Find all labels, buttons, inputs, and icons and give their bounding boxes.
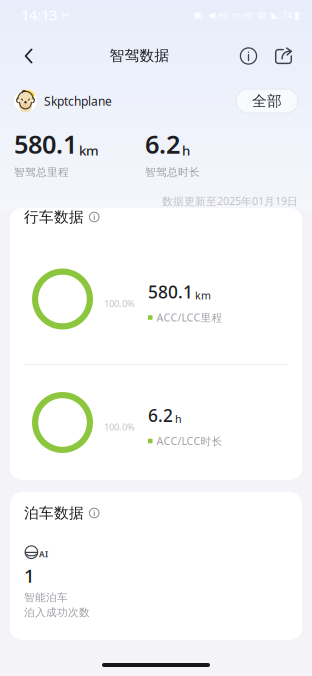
staticText: ◣ bbox=[271, 9, 278, 20]
staticText: 数据更新至2025年01月19日 bbox=[162, 194, 298, 208]
staticText: Skptchplane bbox=[44, 93, 112, 109]
staticText: 智驾数据 bbox=[109, 46, 169, 64]
staticText: ▮ bbox=[294, 9, 300, 21]
staticText: ACC/LCC里程 bbox=[156, 310, 222, 325]
staticText: 100.0% bbox=[104, 297, 135, 310]
staticText: 泊车数据 bbox=[24, 504, 84, 522]
button[interactable]: 全部 bbox=[236, 89, 298, 113]
staticText: km bbox=[79, 141, 99, 159]
staticText: ✂ bbox=[61, 9, 70, 21]
staticText: 智驾总时长 bbox=[145, 166, 200, 179]
staticText: km bbox=[195, 288, 211, 302]
staticText: 泊入成功次数 bbox=[24, 606, 90, 619]
staticText: AI bbox=[39, 549, 48, 559]
button[interactable]: Share bbox=[266, 35, 301, 79]
staticText: h bbox=[182, 141, 190, 159]
staticText: 74 bbox=[282, 8, 292, 21]
staticText: 行车数据 bbox=[24, 208, 84, 226]
staticText: 6.2 bbox=[145, 127, 180, 161]
staticText: 1 bbox=[24, 563, 35, 588]
staticText: ▭ bbox=[232, 9, 241, 20]
staticText: ʜᴅ bbox=[243, 9, 253, 20]
staticText: 智能泊车 bbox=[24, 591, 68, 604]
staticText: ▤ bbox=[257, 9, 266, 20]
button[interactable]: Back bbox=[10, 35, 48, 79]
staticText: h bbox=[175, 412, 182, 426]
staticText: 6.2 bbox=[148, 404, 173, 427]
staticText: ▣ bbox=[193, 9, 202, 20]
button[interactable]: Info bbox=[231, 35, 266, 79]
staticText: 14:13 bbox=[21, 5, 57, 24]
staticText: 580.1 bbox=[148, 280, 193, 303]
staticText: ʜᴅ bbox=[218, 9, 228, 20]
staticText: 全部 bbox=[252, 92, 282, 110]
staticText: 580.1 bbox=[14, 127, 77, 161]
staticText: 智驾总里程 bbox=[14, 166, 69, 179]
staticText: ◀ bbox=[208, 9, 215, 20]
staticText: ACC/LCC时长 bbox=[156, 434, 222, 448]
staticText: 100.0% bbox=[104, 421, 135, 433]
